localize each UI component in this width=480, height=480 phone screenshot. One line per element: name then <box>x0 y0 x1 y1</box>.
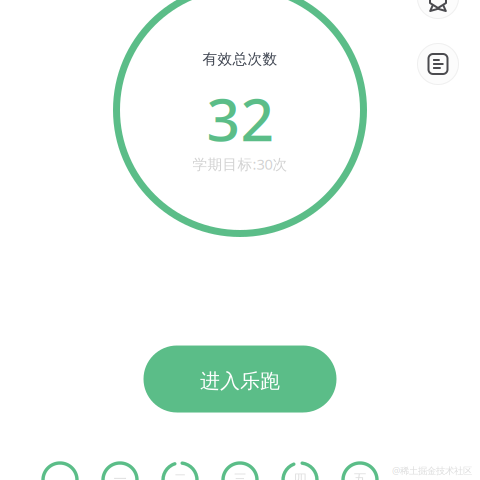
staticText: 五 <box>353 471 366 480</box>
button[interactable]: 进入乐跑 <box>143 345 336 412</box>
button[interactable]: 四 <box>281 461 319 480</box>
staticText: 32 <box>206 79 274 157</box>
button[interactable]: Achievements <box>417 0 459 19</box>
staticText: 四 <box>293 471 306 480</box>
button[interactable]: 五 <box>341 461 379 480</box>
staticText: 三 <box>233 471 246 480</box>
button[interactable]: Week 1 <box>41 461 79 480</box>
staticText: 学期目标:30次 <box>192 154 287 174</box>
button[interactable]: 二 <box>161 461 199 480</box>
staticText: 一 <box>113 471 126 480</box>
staticText: 进入乐跑 <box>200 369 280 393</box>
staticText: 二 <box>173 471 186 480</box>
button[interactable]: 一 <box>101 461 139 480</box>
staticText: 有效总次数 <box>202 50 277 68</box>
staticText: @稀土掘金技术社区 <box>392 464 472 477</box>
button[interactable]: 三 <box>221 461 259 480</box>
button[interactable]: Records <box>417 43 459 85</box>
